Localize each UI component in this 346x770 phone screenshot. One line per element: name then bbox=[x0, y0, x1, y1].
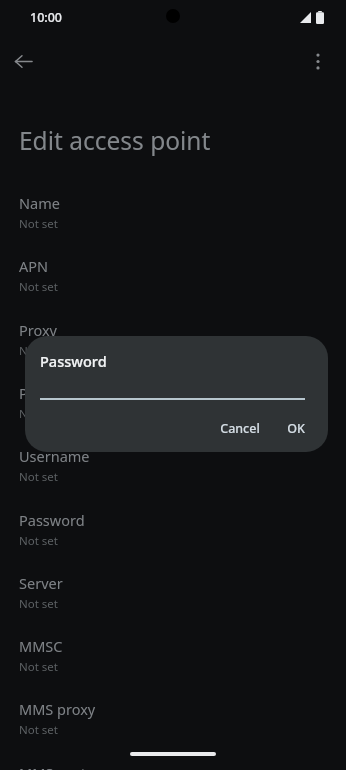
staticText: Not set bbox=[19, 343, 58, 359]
staticText: Not set bbox=[19, 216, 58, 232]
staticText: Edit access point bbox=[19, 124, 211, 157]
staticText: Password bbox=[19, 510, 85, 530]
button[interactable]: Username bbox=[0, 444, 346, 507]
staticText: Not set bbox=[19, 469, 58, 485]
staticText: APN bbox=[19, 256, 49, 276]
staticText: Not set bbox=[19, 406, 58, 422]
staticText: 10:00 bbox=[30, 9, 63, 26]
staticText: Cancel bbox=[220, 420, 260, 437]
button[interactable]: Port bbox=[0, 381, 346, 444]
button[interactable]: More options bbox=[300, 43, 336, 79]
staticText: Name bbox=[19, 193, 60, 213]
button[interactable]: OK bbox=[278, 414, 314, 443]
staticText: Not set bbox=[19, 533, 58, 549]
staticText: Server bbox=[19, 573, 63, 593]
button[interactable]: MMS proxy bbox=[0, 697, 346, 760]
button[interactable]: Proxy bbox=[0, 318, 346, 381]
staticText: Proxy bbox=[19, 320, 58, 340]
staticText: Username bbox=[19, 446, 90, 466]
button[interactable]: Back bbox=[5, 43, 41, 79]
staticText: Port bbox=[19, 383, 48, 403]
button[interactable]: Server bbox=[0, 571, 346, 634]
button[interactable]: APN bbox=[0, 254, 346, 317]
staticText: Not set bbox=[19, 659, 58, 675]
staticText: MMS port bbox=[19, 763, 86, 770]
staticText: Not set bbox=[19, 279, 58, 295]
button[interactable]: Cancel bbox=[211, 414, 269, 443]
button[interactable]: Password bbox=[0, 508, 346, 571]
staticText: Password bbox=[40, 351, 107, 371]
button[interactable]: Name bbox=[0, 191, 346, 254]
staticText: Not set bbox=[19, 722, 58, 738]
staticText: MMSC bbox=[19, 636, 63, 656]
button[interactable]: MMSC bbox=[0, 634, 346, 697]
staticText: OK bbox=[287, 420, 305, 437]
staticText: Not set bbox=[19, 596, 58, 612]
button[interactable]: MMS port bbox=[0, 761, 346, 770]
staticText: MMS proxy bbox=[19, 699, 96, 719]
